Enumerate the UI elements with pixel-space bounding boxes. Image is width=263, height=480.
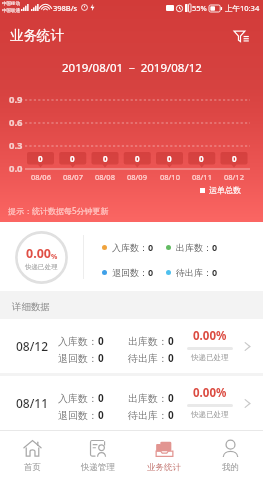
staticText: 待出库： [128,352,168,365]
staticText: 0 [212,241,218,253]
staticText: 退回数： [58,352,98,365]
staticText: 入库数： [112,242,148,253]
staticText: 退回数： [112,267,148,278]
staticText: 0 [167,153,172,164]
staticText: 0.0 [9,162,23,174]
staticText: 0 [135,153,140,164]
staticText: 运单总数 [209,185,241,195]
staticText: 待出库： [128,409,168,422]
staticText: 0.6 [9,116,23,128]
staticText: 0 [98,391,104,405]
staticText: 08/06 [31,172,51,182]
staticText: 0 [168,334,174,348]
staticText: 上午10:34 [225,3,260,13]
button[interactable]: 08/12 [0,319,263,373]
staticText: 55% [192,3,207,13]
staticText: 0 [98,351,104,365]
staticText: 入库数： [58,392,98,405]
staticText: 08/07 [63,172,83,182]
staticText: 0 [98,408,104,422]
staticText: 0 [38,153,43,164]
staticText: 出库数： [128,392,168,405]
staticText: 0 [168,408,174,422]
button[interactable]: 快递管理 [65,431,131,480]
button[interactable]: Filter [227,21,255,49]
staticText: 入库数： [58,335,98,348]
button[interactable]: 08/11 [0,376,263,430]
staticText: 快递管理 [81,462,115,473]
staticText: 08/08 [95,172,115,182]
staticText: 出库数： [128,335,168,348]
staticText: 08/12 [224,172,244,182]
staticText: 0.00% [193,328,227,344]
staticText: 0 [70,153,75,164]
staticText: 提示：统计数据每5分钟更新 [8,205,109,216]
staticText: 0 [98,334,104,348]
staticText: 0.3 [9,139,23,151]
staticText: 0.00 [26,245,51,262]
staticText: 0 [148,266,154,278]
staticText: 08/11 [192,172,212,182]
staticText: 快递已处理 [191,353,229,362]
staticText: 398B/s [53,3,78,13]
staticText: 08/11 [16,395,49,411]
staticText: 08/09 [127,172,147,182]
staticText: 快递已处理 [25,263,58,271]
staticText: 退回数： [58,409,98,422]
staticText: 2019/08/01 － 2019/08/12 [62,60,202,76]
staticText: 0 [212,266,218,278]
staticText: 08/10 [160,172,180,182]
staticText: 业务统计 [147,462,181,473]
button[interactable]: 业务统计 [131,431,197,480]
staticText: 0 [199,153,204,164]
staticText: 业务统计 [10,27,64,44]
staticText: 详细数据 [12,301,50,313]
staticText: 0.9 [9,93,23,105]
staticText: 首页 [24,462,41,473]
staticText: 出库数： [176,242,212,253]
staticText: 待出库： [176,267,212,278]
staticText: 0.00% [193,385,227,401]
staticText: 0 [103,153,108,164]
staticText: 中国联通 [2,8,20,14]
staticText: 0 [232,153,237,164]
staticText: 0 [148,241,154,253]
staticText: 0 [168,391,174,405]
staticText: % [51,252,58,262]
staticText: 我的 [222,462,239,473]
staticText: 08/12 [16,338,49,354]
staticText: 中国移动 [2,1,20,7]
button[interactable]: 我的 [197,431,263,480]
button[interactable]: 首页 [0,431,65,480]
staticText: 快递已处理 [191,410,229,419]
staticText: 0 [168,351,174,365]
